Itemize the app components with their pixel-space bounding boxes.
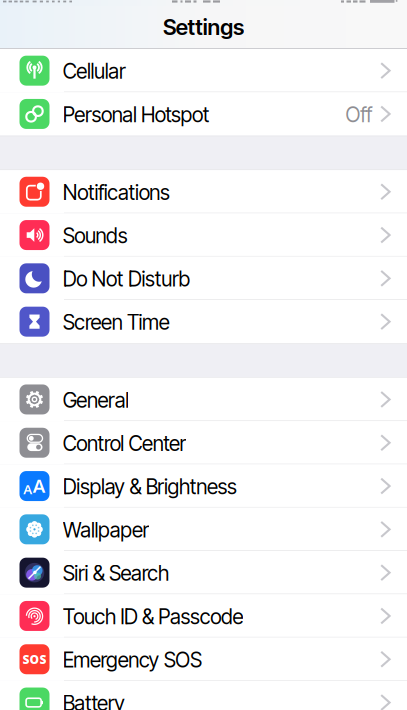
button[interactable]: Screen Time [0, 300, 407, 343]
staticText: Settings [163, 14, 244, 40]
button[interactable]: Battery [0, 681, 407, 710]
staticText: A [33, 473, 46, 498]
staticText: Sounds [63, 223, 128, 248]
button[interactable]: Notifications [0, 170, 407, 213]
staticText: General [63, 388, 129, 413]
button[interactable]: A [0, 464, 407, 508]
staticText: Emergency SOS [63, 647, 202, 672]
button[interactable]: Personal Hotspot [0, 92, 407, 136]
staticText: Notifications [63, 180, 170, 205]
staticText: Off [345, 102, 372, 127]
button[interactable]: Control Center [0, 421, 407, 464]
button[interactable]: Touch ID & Passcode [0, 594, 407, 638]
staticText: Wallpaper [63, 517, 149, 542]
staticText: Battery [63, 691, 125, 710]
staticText: SOS [22, 651, 46, 667]
button[interactable]: SOS [0, 638, 407, 681]
button[interactable]: Wallpaper [0, 508, 407, 551]
button[interactable]: Siri & Search [0, 551, 407, 594]
staticText: Personal Hotspot [63, 102, 210, 127]
staticText: Control Center [63, 431, 186, 456]
button[interactable]: Sounds [0, 213, 407, 257]
staticText: Siri & Search [63, 561, 169, 586]
staticText: A [23, 480, 32, 498]
button[interactable]: Do Not Disturb [0, 257, 407, 300]
button[interactable]: Cellular [0, 49, 407, 92]
staticText: Do Not Disturb [63, 266, 190, 291]
staticText: Display & Brightness [63, 474, 237, 499]
staticText: Touch ID & Passcode [63, 604, 243, 629]
staticText: Cellular [63, 59, 126, 84]
button[interactable]: General [0, 378, 407, 421]
staticText: Screen Time [63, 310, 170, 335]
